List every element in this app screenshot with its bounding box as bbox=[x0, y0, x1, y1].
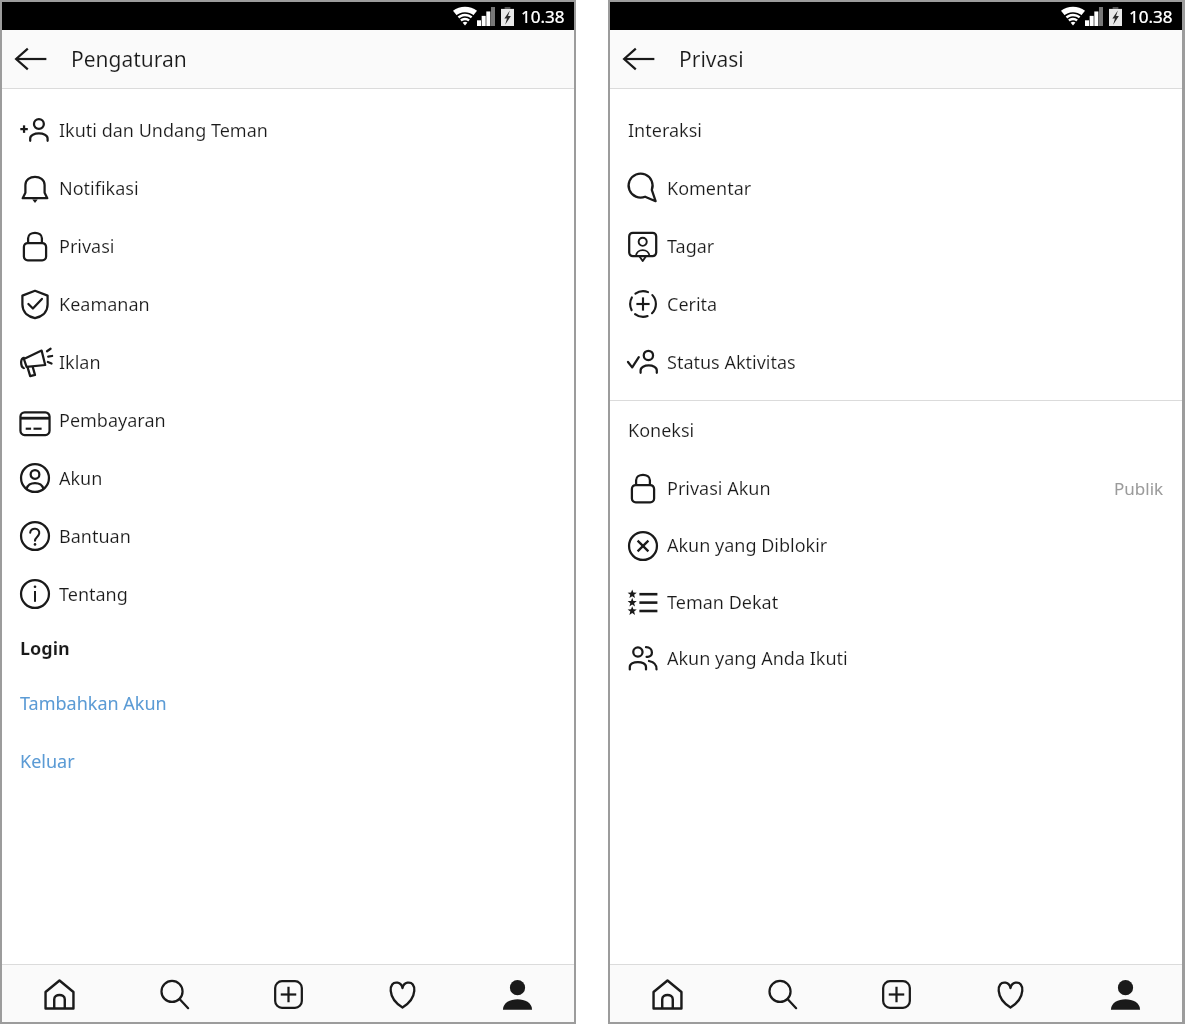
staticText: Privasi bbox=[59, 234, 115, 259]
button[interactable]: Activity bbox=[982, 966, 1038, 1022]
staticText: Tambahkan Akun bbox=[20, 691, 167, 716]
button[interactable]: Keluar bbox=[2, 732, 574, 790]
staticText: Bantuan bbox=[59, 524, 131, 549]
staticText: 10.38 bbox=[521, 5, 565, 28]
button[interactable]: Tambahkan Akun bbox=[2, 674, 574, 732]
staticText: Komentar bbox=[667, 176, 752, 201]
button[interactable]: Pembayaran bbox=[2, 391, 574, 449]
button[interactable]: Tentang bbox=[2, 565, 574, 623]
staticText: Status Aktivitas bbox=[667, 350, 796, 375]
button[interactable]: Bantuan bbox=[2, 507, 574, 565]
button[interactable]: Status Aktivitas bbox=[610, 333, 1182, 391]
button[interactable]: Home bbox=[31, 966, 87, 1022]
button[interactable]: Ikuti dan Undang Teman bbox=[2, 101, 574, 159]
button[interactable]: Komentar bbox=[610, 159, 1182, 217]
button[interactable]: Profile bbox=[489, 966, 545, 1022]
staticText: Akun bbox=[59, 466, 103, 491]
staticText: Cerita bbox=[667, 292, 718, 317]
staticText: Interaksi bbox=[628, 118, 702, 143]
staticText: 10.38 bbox=[1129, 5, 1173, 28]
button[interactable]: Home bbox=[639, 966, 695, 1022]
button[interactable]: Akun bbox=[2, 449, 574, 507]
staticText: Koneksi bbox=[628, 418, 695, 443]
staticText: Privasi bbox=[679, 45, 744, 74]
staticText: Akun yang Diblokir bbox=[667, 533, 828, 558]
staticText: Keamanan bbox=[59, 292, 150, 317]
staticText: Publik bbox=[1114, 477, 1164, 500]
button[interactable]: Privasi Akun bbox=[610, 459, 1182, 517]
button[interactable]: Notifikasi bbox=[2, 159, 574, 217]
staticText: Akun yang Anda Ikuti bbox=[667, 646, 848, 671]
button[interactable]: Add post bbox=[868, 966, 924, 1022]
button[interactable]: Activity bbox=[374, 966, 430, 1022]
staticText: Teman Dekat bbox=[667, 590, 779, 615]
staticText: Tentang bbox=[59, 582, 128, 607]
button[interactable]: Cerita bbox=[610, 275, 1182, 333]
staticText: Login bbox=[20, 636, 70, 661]
button[interactable]: Back bbox=[5, 33, 57, 85]
button[interactable]: Tagar bbox=[610, 217, 1182, 275]
button[interactable]: Privasi bbox=[2, 217, 574, 275]
staticText: Pembayaran bbox=[59, 408, 166, 433]
button[interactable]: Search bbox=[146, 966, 202, 1022]
staticText: Ikuti dan Undang Teman bbox=[59, 118, 268, 143]
button[interactable]: Iklan bbox=[2, 333, 574, 391]
button[interactable]: Add post bbox=[260, 966, 316, 1022]
button[interactable]: Search bbox=[754, 966, 810, 1022]
staticText: Notifikasi bbox=[59, 176, 139, 201]
staticText: Pengaturan bbox=[71, 45, 187, 74]
button[interactable]: Akun yang Anda Ikuti bbox=[610, 630, 1182, 686]
button[interactable]: Profile bbox=[1097, 966, 1153, 1022]
staticText: Tagar bbox=[667, 234, 715, 259]
button[interactable]: Teman Dekat bbox=[610, 574, 1182, 630]
button[interactable]: Back bbox=[613, 33, 665, 85]
staticText: Iklan bbox=[59, 350, 101, 375]
staticText: Keluar bbox=[20, 749, 75, 774]
staticText: Privasi Akun bbox=[667, 476, 771, 501]
button[interactable]: Keamanan bbox=[2, 275, 574, 333]
button[interactable]: Akun yang Diblokir bbox=[610, 517, 1182, 574]
